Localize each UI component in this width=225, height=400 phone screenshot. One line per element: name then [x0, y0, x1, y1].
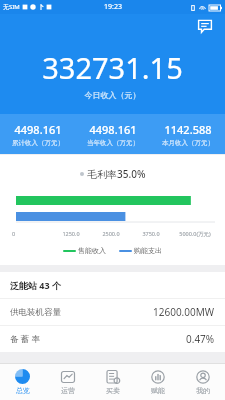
staticText: 泛能站 43 个	[10, 279, 61, 291]
staticText: 运营	[61, 386, 75, 395]
button[interactable]: 4498.161	[0, 122, 75, 147]
button[interactable]: 4498.161	[75, 122, 150, 147]
button[interactable]: 1142.588	[150, 122, 225, 147]
staticText: 买卖	[106, 386, 120, 395]
staticText: 累计收入（万元）	[12, 139, 64, 147]
button[interactable]: 我的	[180, 364, 225, 400]
button[interactable]: 备 蓄 率	[0, 326, 225, 352]
staticText: 1142.588	[164, 122, 212, 137]
staticText: 0.47%	[186, 332, 215, 346]
staticText: 备 蓄 率	[10, 333, 40, 345]
staticText: 供电装机容量	[10, 307, 61, 318]
staticText: 我的	[196, 386, 210, 395]
staticText: 4498.161	[89, 122, 137, 137]
staticText: 赋能	[151, 386, 165, 395]
staticText: 无SIM	[3, 3, 20, 11]
button[interactable]: 运营	[45, 364, 90, 400]
button[interactable]: 赋能	[135, 364, 180, 400]
staticText: 购能支出	[134, 246, 162, 255]
button[interactable]: 泛能站 43 个	[0, 272, 225, 298]
staticText: 4498.161	[14, 122, 62, 137]
staticText: 1250.0	[51, 230, 91, 237]
staticText: 5000.0(万元)	[171, 230, 219, 238]
staticText: 0	[12, 230, 51, 237]
staticText: 售能收入	[78, 246, 106, 255]
button[interactable]: Messages	[195, 16, 215, 36]
staticText: 3750.0	[131, 230, 171, 237]
staticText: 今日收入（元）	[0, 90, 225, 100]
staticText: 2500.0	[91, 230, 131, 237]
staticText: 本月收入（万元）	[162, 139, 214, 147]
staticText: 总览	[16, 386, 30, 395]
staticText: 当年收入（万元）	[87, 139, 139, 147]
staticText: 332731.15	[0, 48, 225, 87]
staticText: 毛利率35.0%	[87, 167, 146, 181]
staticText: 12600.00MW	[153, 305, 215, 319]
button[interactable]: 买卖	[90, 364, 135, 400]
staticText: 19:23	[104, 2, 122, 12]
button[interactable]: 总览	[0, 364, 45, 400]
button[interactable]: 供电装机容量	[0, 299, 225, 325]
